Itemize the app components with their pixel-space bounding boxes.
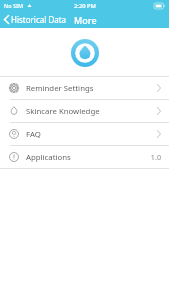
button[interactable]: Historical Data [0, 12, 73, 27]
staticText: 2:20 PM [74, 2, 96, 10]
button[interactable]: Reminder Settings [0, 77, 169, 99]
staticText: More [74, 14, 97, 26]
button[interactable]: Applications [0, 146, 169, 168]
staticText: Reminder Settings [26, 83, 94, 94]
staticText: 1.0 [150, 152, 161, 162]
button[interactable]: Skincare Knowledge [0, 100, 169, 122]
staticText: FAQ [26, 129, 41, 140]
staticText: Skincare Knowledge [26, 106, 100, 117]
staticText: No SIM [4, 2, 24, 9]
button[interactable]: FAQ [0, 123, 169, 145]
staticText: Historical Data [11, 14, 67, 25]
staticText: Applications [26, 152, 71, 163]
